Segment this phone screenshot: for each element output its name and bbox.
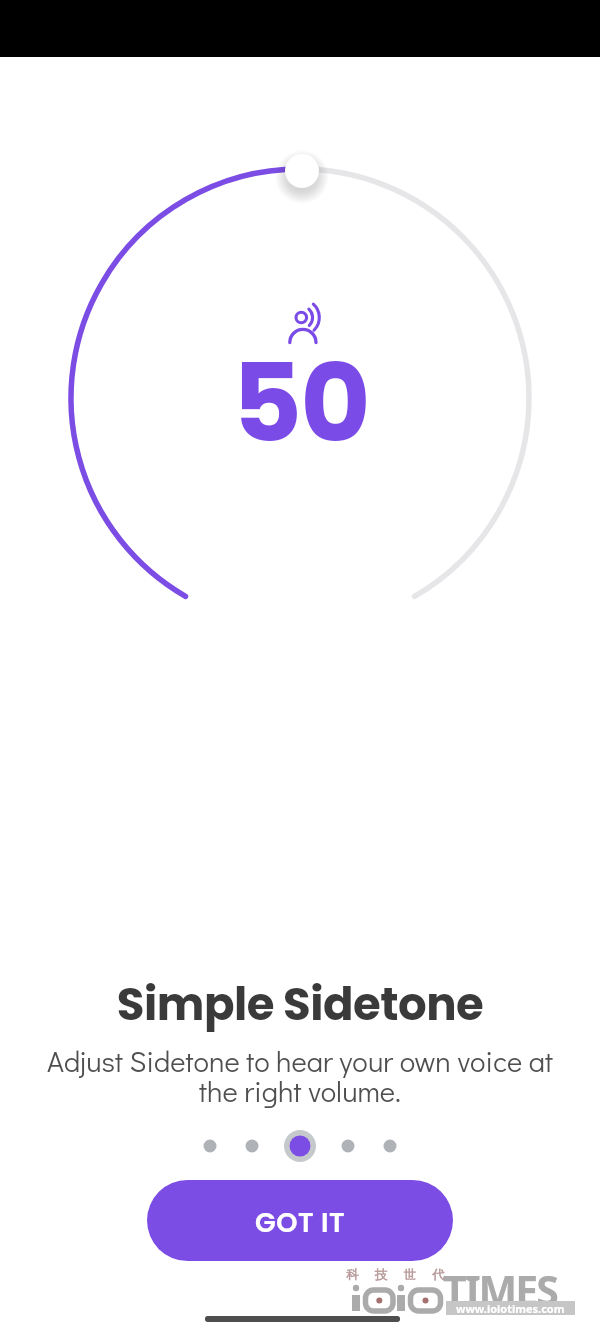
staticText: GOT IT	[255, 1204, 346, 1242]
staticText: 科 技 世 代	[346, 1266, 452, 1283]
button[interactable]: GOT IT	[147, 1180, 453, 1261]
staticText: TIMES	[443, 1262, 557, 1318]
staticText: www.ioiotimes.com	[456, 1301, 565, 1315]
staticText: Adjust Sidetone to hear your own voice a…	[0, 1042, 600, 1110]
staticText: Simple Sidetone	[0, 973, 600, 1036]
staticText: 50	[232, 328, 369, 479]
